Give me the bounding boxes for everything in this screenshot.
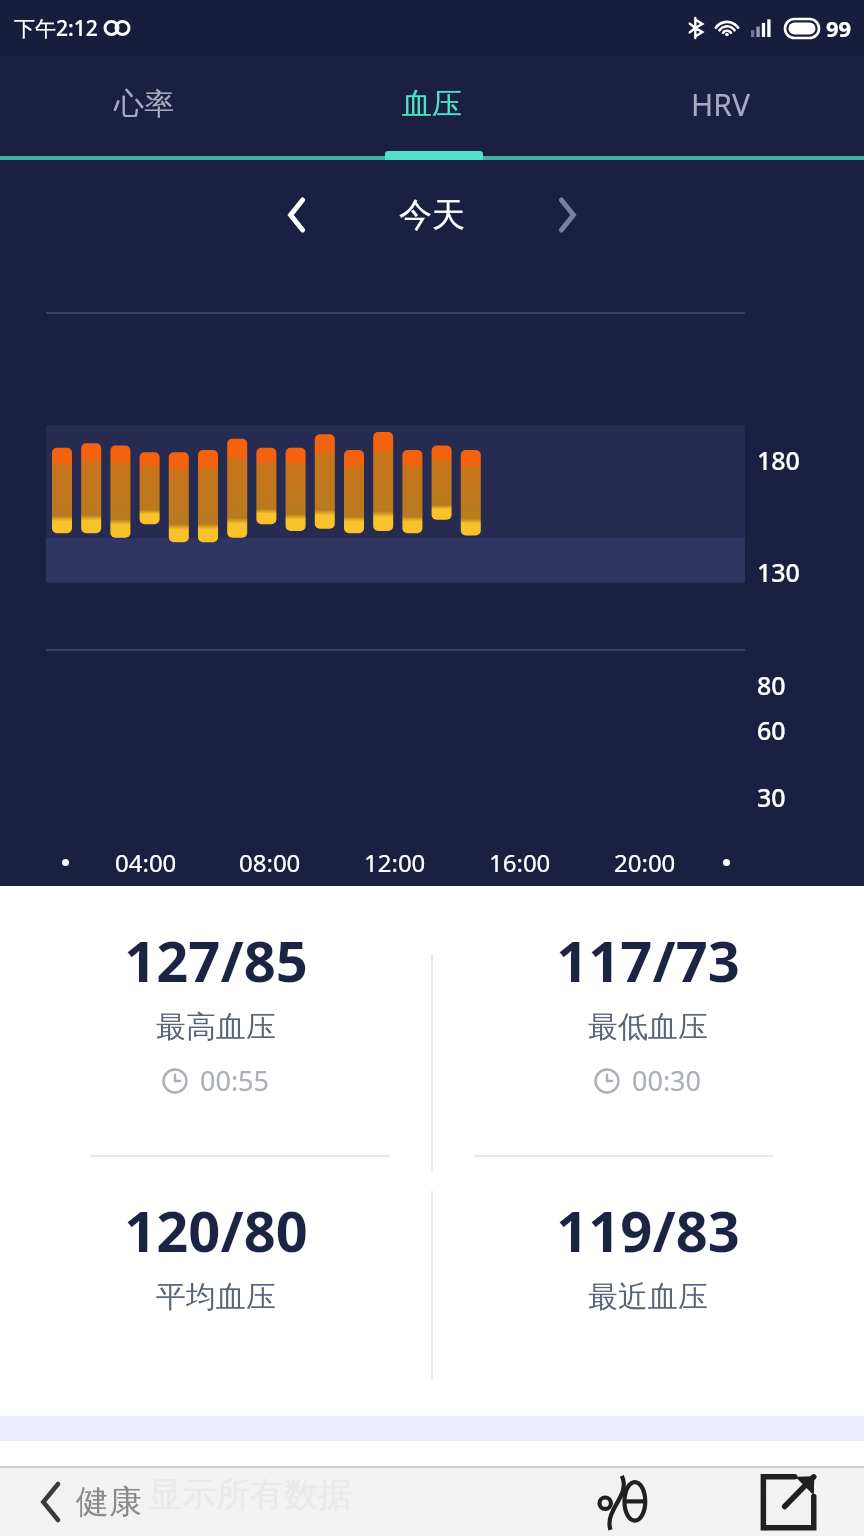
staticText: 血压 bbox=[402, 85, 462, 123]
staticText: 心率 bbox=[114, 85, 174, 123]
staticText: 最高血压 bbox=[156, 1008, 276, 1046]
staticText: 120/80 bbox=[124, 1192, 308, 1268]
staticText: 30 bbox=[757, 780, 786, 814]
staticText: 00:30 bbox=[632, 1062, 702, 1099]
staticText: 20:00 bbox=[614, 846, 676, 879]
staticText: 平均血压 bbox=[156, 1278, 276, 1316]
staticText: 下午2:12 bbox=[14, 14, 98, 43]
staticText: 12:00 bbox=[364, 846, 426, 879]
staticText: 00:55 bbox=[200, 1062, 270, 1099]
staticText: 最近血压 bbox=[588, 1278, 708, 1316]
button[interactable]: 健康 bbox=[40, 1481, 142, 1523]
staticText: HRV bbox=[691, 84, 750, 125]
button[interactable]: Share bbox=[740, 1468, 836, 1536]
staticText: 99 bbox=[826, 13, 852, 43]
button[interactable]: Activity bbox=[578, 1468, 674, 1536]
staticText: 最低血压 bbox=[588, 1008, 708, 1046]
button[interactable]: 120/80 bbox=[0, 1156, 432, 1316]
button[interactable]: HRV bbox=[576, 56, 864, 152]
staticText: 08:00 bbox=[239, 846, 301, 879]
staticText: 健康 bbox=[76, 1481, 142, 1523]
staticText: 60 bbox=[757, 713, 786, 747]
button[interactable]: 心率 bbox=[0, 56, 288, 152]
button[interactable]: 117/73 bbox=[432, 886, 864, 1099]
staticText: 16:00 bbox=[489, 846, 551, 879]
button[interactable]: Next day bbox=[532, 180, 602, 250]
staticText: 130 bbox=[757, 555, 800, 589]
button[interactable]: 127/85 bbox=[0, 886, 432, 1099]
staticText: 今天 bbox=[399, 194, 465, 236]
button[interactable]: 119/83 bbox=[432, 1156, 864, 1316]
staticText: 04:00 bbox=[115, 846, 177, 879]
staticText: 119/83 bbox=[556, 1192, 740, 1268]
staticText: 127/85 bbox=[124, 922, 308, 998]
staticText: 80 bbox=[757, 668, 786, 702]
staticText: 117/73 bbox=[556, 922, 740, 998]
button[interactable]: 血压 bbox=[288, 56, 576, 152]
staticText: 180 bbox=[757, 443, 800, 477]
button[interactable]: Previous day bbox=[262, 180, 332, 250]
staticText: 显示所有数据 bbox=[148, 1473, 352, 1516]
